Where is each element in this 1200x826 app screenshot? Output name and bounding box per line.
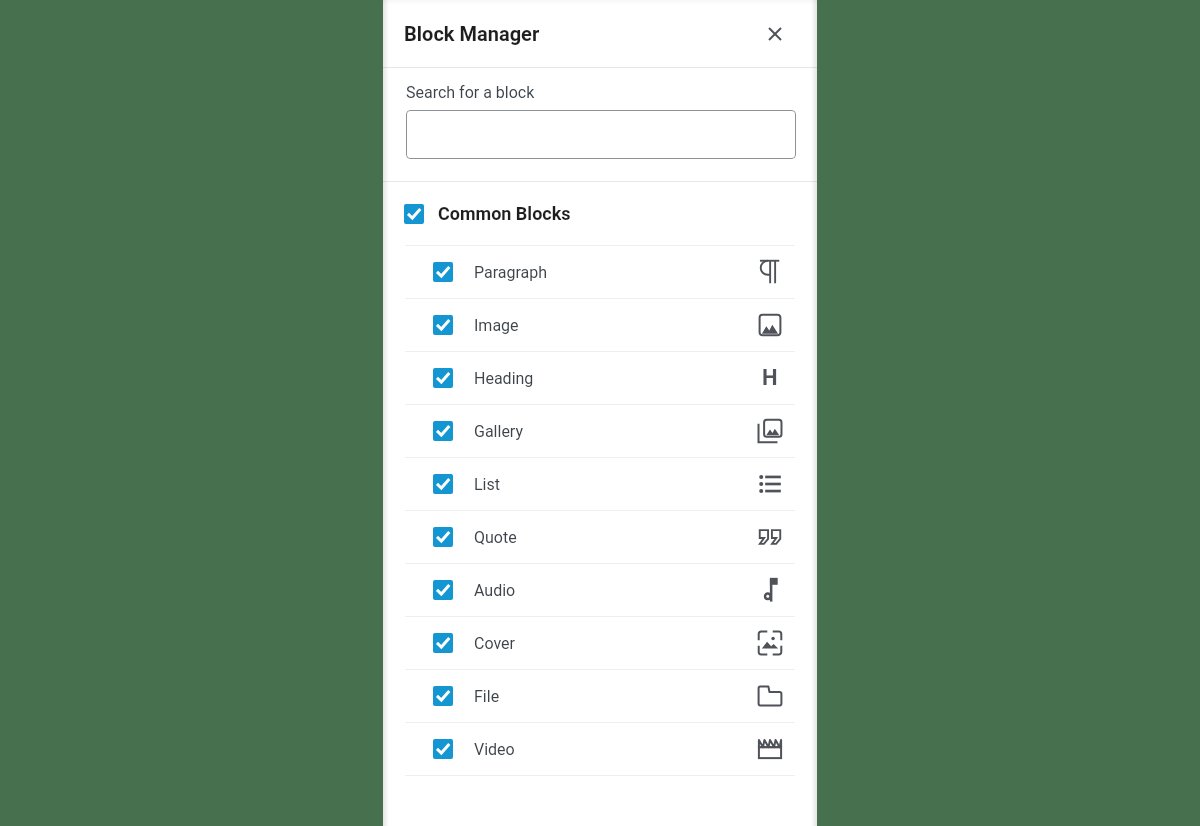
staticText: Common Blocks bbox=[438, 203, 571, 224]
staticText: Image bbox=[474, 316, 519, 335]
staticText: Quote bbox=[474, 528, 517, 547]
staticText: List bbox=[474, 475, 500, 494]
staticText: Block Manager bbox=[404, 22, 540, 45]
button[interactable] bbox=[406, 110, 796, 159]
button[interactable]: Gallery bbox=[383, 405, 817, 457]
button[interactable]: List bbox=[383, 458, 817, 510]
staticText: H bbox=[762, 365, 778, 391]
staticText: Paragraph bbox=[474, 263, 548, 282]
staticText: Search for a block bbox=[406, 83, 535, 102]
button[interactable]: Common Blocks bbox=[383, 182, 817, 245]
button[interactable]: Video bbox=[383, 723, 817, 775]
button[interactable]: Close bbox=[759, 18, 791, 50]
staticText: Cover bbox=[474, 634, 515, 653]
staticText: Gallery bbox=[474, 422, 523, 441]
button[interactable]: File bbox=[383, 670, 817, 722]
button[interactable]: Cover bbox=[383, 617, 817, 669]
staticText: File bbox=[474, 687, 500, 706]
staticText: Heading bbox=[474, 369, 534, 388]
button[interactable]: Quote bbox=[383, 511, 817, 563]
button[interactable]: Audio bbox=[383, 564, 817, 616]
staticText: Audio bbox=[474, 581, 516, 600]
button[interactable]: Paragraph bbox=[383, 246, 817, 298]
button[interactable]: Heading bbox=[383, 352, 817, 404]
button[interactable]: Image bbox=[383, 299, 817, 351]
staticText: Video bbox=[474, 740, 515, 759]
